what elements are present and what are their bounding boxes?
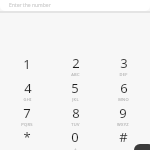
staticText: 1 [23,55,31,73]
button[interactable]: 7 [6,103,48,128]
staticText: # [119,128,128,146]
button[interactable]: 6 [102,78,144,103]
staticText: 3 [120,54,128,72]
staticText: 2 [72,54,80,72]
staticText: 5 [71,79,79,97]
staticText: PQRS [21,122,33,127]
button[interactable]: * [6,128,48,150]
button[interactable]: Call [134,144,150,150]
staticText: 8 [72,104,80,122]
staticText: MNO [118,97,129,102]
staticText: Enter the number [9,2,51,9]
button[interactable]: # [102,128,144,150]
staticText: TUV [71,122,80,127]
button[interactable]: Enter the number [0,0,150,11]
staticText: 7 [23,104,31,122]
staticText: 6 [120,79,128,97]
button[interactable]: 4 [6,78,48,103]
button[interactable]: 0 [54,128,96,150]
staticText: * [23,128,31,146]
staticText: 4 [24,79,32,97]
button[interactable]: 2 [54,53,96,78]
staticText: WXYZ [117,122,129,127]
button[interactable]: 1 [6,53,48,78]
staticText: DEF [119,72,128,77]
staticText: ABC [71,72,80,77]
button[interactable]: 8 [54,103,96,128]
button[interactable]: 5 [54,78,96,103]
staticText: 0 [71,128,79,146]
staticText: + [74,146,77,150]
staticText: 9 [119,104,127,122]
staticText: JKL [72,97,79,102]
staticText: GHI [23,97,32,102]
button[interactable]: 9 [102,103,144,128]
button[interactable]: 3 [102,53,144,78]
